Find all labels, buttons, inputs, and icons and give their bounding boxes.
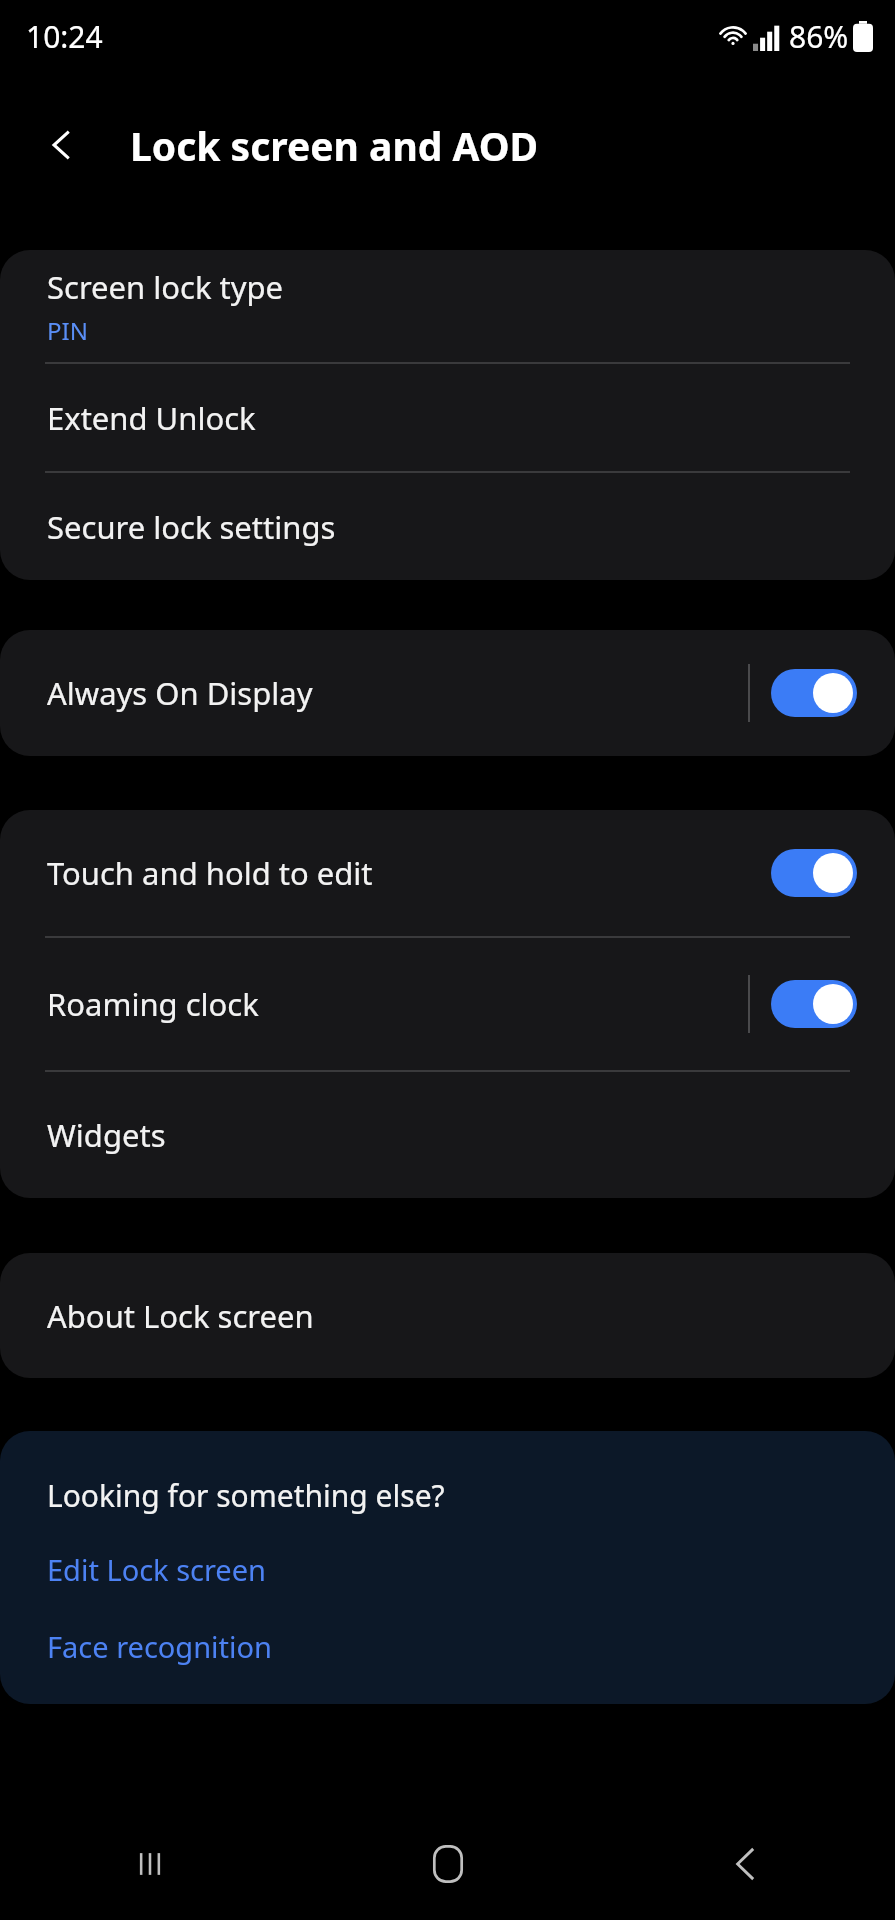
button[interactable]: Roaming clock <box>0 938 895 1070</box>
button[interactable]: Back <box>597 1808 895 1920</box>
staticText: Roaming clock <box>47 983 259 1025</box>
staticText: Face recognition <box>47 1627 273 1666</box>
staticText: Extend Unlock <box>47 397 256 439</box>
button[interactable]: Recent apps <box>0 1808 299 1920</box>
button[interactable]: Face recognition <box>0 1619 895 1674</box>
button[interactable]: Toggle Always On Display <box>771 669 857 717</box>
staticText: Looking for something else? <box>47 1475 445 1516</box>
button[interactable]: About Lock screen <box>0 1253 895 1378</box>
staticText: Widgets <box>47 1114 166 1156</box>
button[interactable]: Extend Unlock <box>0 364 895 471</box>
button[interactable]: Secure lock settings <box>0 473 895 580</box>
staticText: Always On Display <box>47 672 313 714</box>
staticText: Screen lock type <box>47 266 284 308</box>
button[interactable]: Home <box>299 1808 597 1920</box>
staticText: Touch and hold to edit <box>47 852 373 894</box>
button[interactable]: Always On Display <box>0 630 895 756</box>
button[interactable]: Toggle Roaming clock <box>771 980 857 1028</box>
button[interactable]: Toggle Touch and hold to edit <box>771 849 857 897</box>
staticText: 10:24 <box>26 16 103 57</box>
staticText: Lock screen and AOD <box>130 119 539 172</box>
staticText: About Lock screen <box>47 1295 314 1337</box>
staticText: 86% <box>789 16 849 57</box>
staticText: PIN <box>47 314 88 347</box>
button[interactable]: Screen lock type <box>0 250 895 362</box>
staticText: Secure lock settings <box>47 506 336 548</box>
button[interactable]: Widgets <box>0 1072 895 1198</box>
button[interactable]: Touch and hold to edit <box>0 810 895 936</box>
button[interactable]: Back <box>34 116 92 174</box>
staticText: Edit Lock screen <box>47 1550 266 1589</box>
button[interactable]: Edit Lock screen <box>0 1542 895 1597</box>
